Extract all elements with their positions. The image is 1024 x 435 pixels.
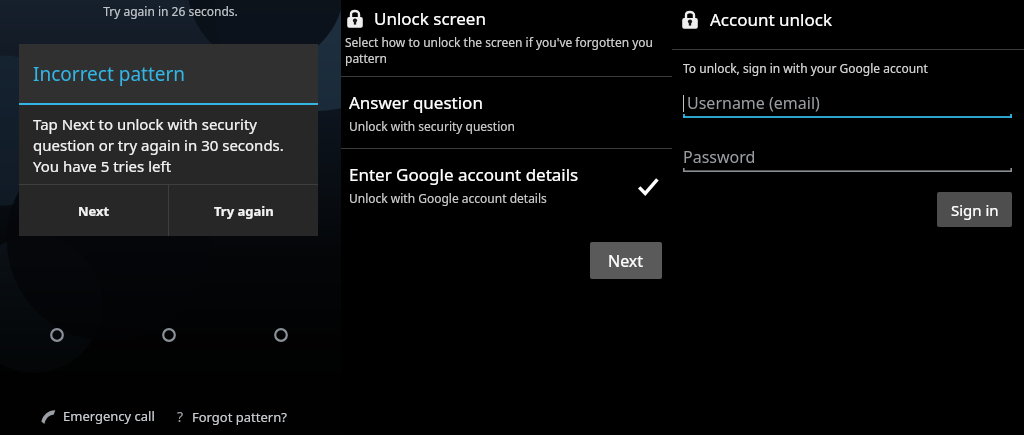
staticText: Account unlock (710, 8, 832, 31)
button[interactable]: Next (19, 185, 168, 236)
staticText: Unlock with security question (349, 118, 515, 134)
staticText: Try again in 26 seconds. (0, 3, 341, 19)
staticText: Unlock with Google account details (349, 190, 547, 206)
staticText: Password (683, 146, 756, 168)
button[interactable]: Username (email) (683, 88, 1012, 118)
staticText: Next (608, 250, 644, 272)
button[interactable]: Answer question (341, 77, 672, 148)
button[interactable]: Next (590, 242, 662, 279)
staticText: Forgot pattern? (192, 408, 287, 426)
staticText: Tap Next to unlock with security questio… (33, 114, 306, 177)
staticText: Username (email) (687, 92, 820, 114)
button[interactable]: Try again (169, 185, 318, 236)
staticText: Select how to unlock the screen if you'v… (345, 34, 672, 67)
staticText: Enter Google account details (349, 163, 579, 186)
button[interactable]: Emergency call (40, 407, 155, 425)
staticText: Emergency call (63, 407, 155, 425)
button[interactable]: Enter Google account details (341, 149, 672, 220)
staticText: Try again (214, 202, 274, 220)
staticText: Next (78, 202, 110, 220)
staticText: Sign in (951, 200, 999, 220)
button[interactable]: Password (683, 142, 1012, 172)
button[interactable]: ? (177, 407, 287, 426)
staticText: Incorrect pattern (33, 61, 186, 87)
staticText: To unlock, sign in with your Google acco… (683, 60, 928, 76)
staticText: Answer question (349, 91, 483, 114)
staticText: ? (177, 407, 184, 426)
staticText: Unlock screen (374, 7, 486, 30)
button[interactable]: Sign in (937, 192, 1012, 227)
other: Emergency call (40, 408, 57, 425)
